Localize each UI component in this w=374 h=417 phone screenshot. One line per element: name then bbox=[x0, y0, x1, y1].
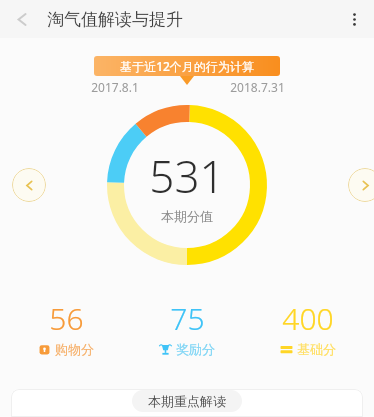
staticText: 淘气值解读与提升 bbox=[47, 9, 183, 30]
staticText: 奖励分 bbox=[176, 341, 215, 357]
staticText: 400 bbox=[282, 298, 334, 339]
staticText: 2017.8.1 bbox=[91, 79, 139, 95]
button[interactable]: Previous period bbox=[12, 168, 46, 202]
staticText: 基础分 bbox=[297, 341, 336, 357]
staticText: 75 bbox=[170, 298, 205, 339]
button[interactable]: More options bbox=[336, 1, 372, 37]
button[interactable] bbox=[11, 389, 363, 417]
button[interactable]: Next period bbox=[348, 168, 374, 202]
staticText: 2018.7.31 bbox=[230, 79, 285, 95]
staticText: 购物分 bbox=[55, 341, 94, 357]
button[interactable]: 56 bbox=[14, 298, 118, 357]
button[interactable]: 400 bbox=[256, 298, 360, 357]
staticText: 基于近12个月的行为计算 bbox=[120, 58, 254, 74]
staticText: 本期分值 bbox=[161, 208, 213, 224]
staticText: 56 bbox=[49, 298, 84, 339]
button[interactable]: 75 bbox=[135, 298, 239, 357]
button[interactable]: 基于近12个月的行为计算 bbox=[94, 56, 280, 76]
button[interactable]: Back bbox=[4, 1, 40, 37]
staticText: 本期重点解读 bbox=[148, 393, 226, 409]
staticText: 531 bbox=[149, 146, 225, 206]
